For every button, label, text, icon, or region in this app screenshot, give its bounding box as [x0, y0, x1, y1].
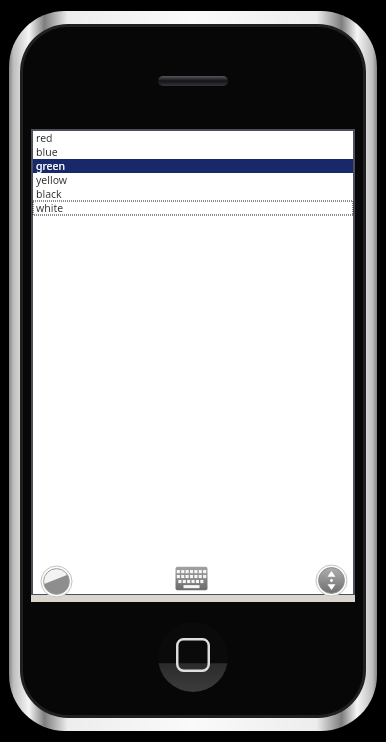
button[interactable]: Home	[158, 622, 228, 692]
staticText: yellow	[36, 173, 68, 187]
staticText: red	[36, 131, 53, 145]
staticText: green	[36, 159, 65, 173]
button[interactable]: yellow	[33, 173, 353, 187]
staticText: black	[36, 187, 62, 201]
button[interactable]: blue	[33, 145, 353, 159]
button[interactable]: green	[33, 159, 353, 173]
button[interactable]: Scroll up or down	[316, 565, 347, 596]
button[interactable]: Brightness	[41, 566, 72, 597]
button[interactable]: Keyboard	[172, 563, 211, 594]
button[interactable]: black	[33, 187, 353, 201]
staticText: white	[36, 201, 64, 215]
button[interactable]: white	[33, 201, 353, 215]
staticText: blue	[36, 145, 58, 159]
button[interactable]: red	[33, 131, 353, 145]
